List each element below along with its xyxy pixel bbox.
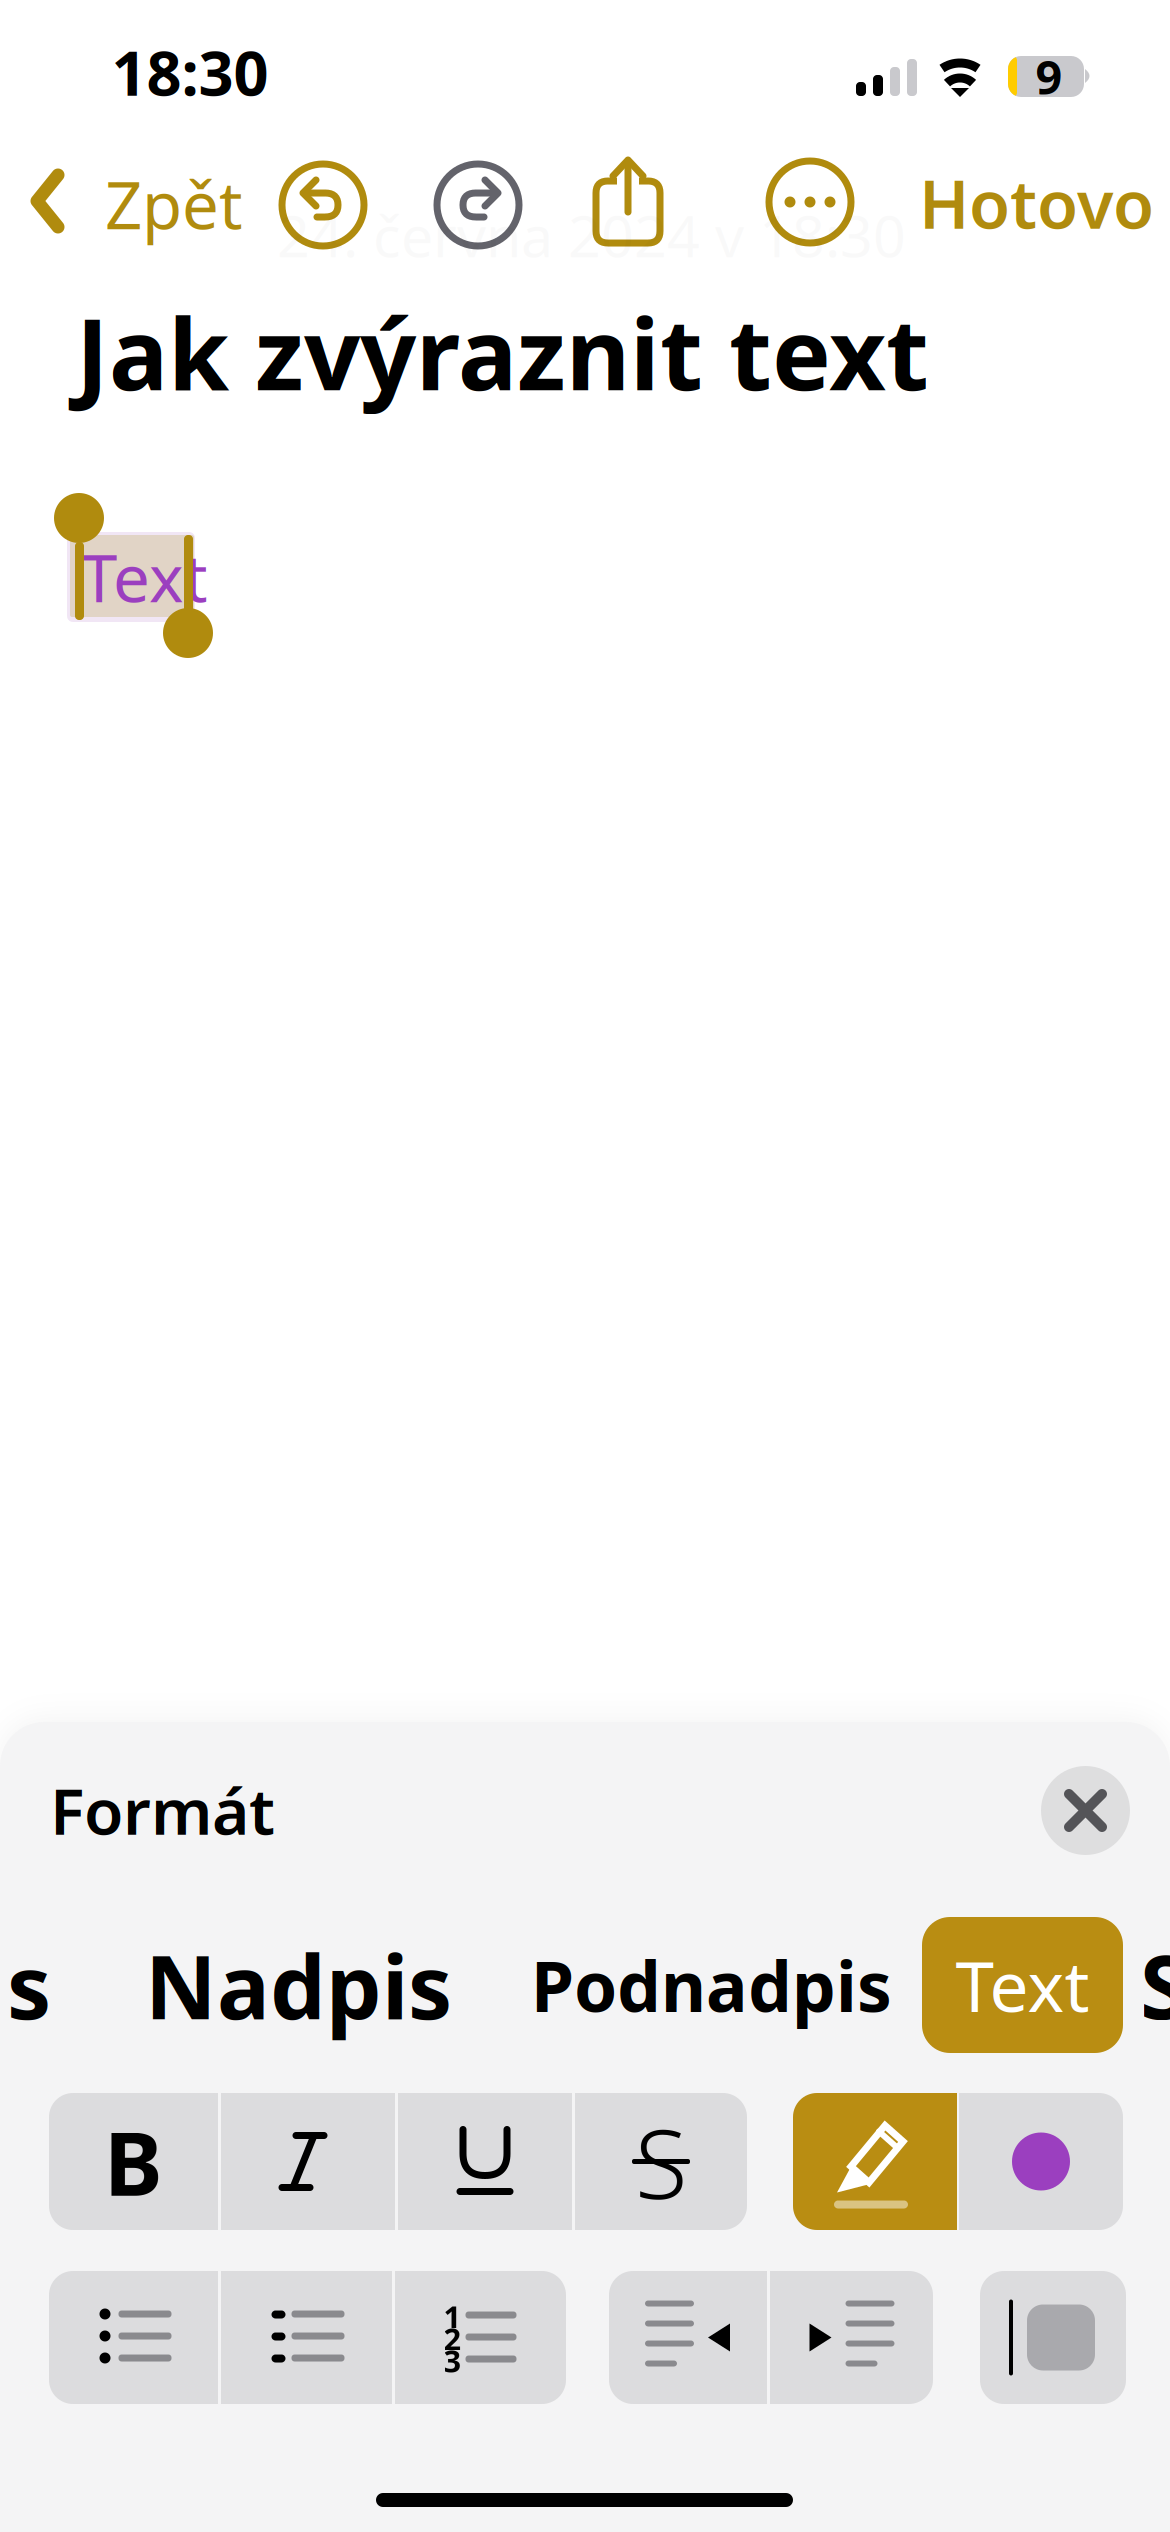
button[interactable]: Bulleted list — [49, 2271, 218, 2404]
button[interactable]: B — [49, 2093, 218, 2230]
staticText: 18:30 — [111, 31, 268, 113]
button[interactable]: Italic — [221, 2093, 395, 2230]
button[interactable]: Share — [592, 154, 664, 250]
staticText: Text — [81, 534, 208, 620]
staticText: 1 — [443, 2296, 461, 2337]
button[interactable]: Highlight — [793, 2093, 957, 2230]
button[interactable]: Highlight colour — [959, 2093, 1123, 2230]
staticText: S — [635, 2098, 687, 2225]
staticText: Zpět — [105, 161, 243, 247]
button[interactable]: Underline — [398, 2093, 572, 2230]
staticText: 3 — [443, 2340, 461, 2381]
staticText: Jak zvýraznit text — [76, 286, 929, 417]
staticText: 24. června 2024 v 18:30 — [277, 197, 906, 273]
staticText: Podnadpis — [531, 1939, 892, 2031]
staticText: 9 — [1035, 45, 1062, 107]
button[interactable]: Numbered list — [395, 2271, 566, 2404]
button[interactable]: Indent — [770, 2271, 933, 2404]
button[interactable]: Text — [922, 1917, 1123, 2053]
button[interactable]: Close — [1041, 1766, 1130, 1855]
button[interactable]: s — [0, 1916, 64, 2054]
staticText: B — [104, 2103, 163, 2220]
staticText: Formát — [50, 1767, 275, 1852]
button[interactable]: Hotovo — [919, 148, 1170, 258]
button[interactable]: Nadpis — [133, 1916, 464, 2054]
staticText: Nadpis — [145, 1927, 452, 2043]
button[interactable]: Zpět — [18, 148, 268, 258]
staticText: Hotovo — [919, 159, 1154, 247]
button[interactable]: Podnadpis — [519, 1916, 904, 2054]
button[interactable]: Strikethrough — [575, 2093, 747, 2230]
button[interactable]: Undo — [280, 162, 366, 248]
staticText: s — [7, 1927, 51, 2043]
button[interactable]: S — [1134, 1916, 1170, 2054]
button[interactable]: Dashed list — [221, 2271, 392, 2404]
staticText: S — [1140, 1927, 1170, 2043]
button[interactable]: Insert block — [980, 2271, 1126, 2404]
button[interactable]: More — [767, 159, 853, 245]
staticText: 2 — [443, 2318, 461, 2359]
button[interactable]: Redo — [435, 162, 521, 248]
staticText: Text — [955, 1939, 1089, 2031]
button[interactable]: Outdent — [609, 2271, 767, 2404]
